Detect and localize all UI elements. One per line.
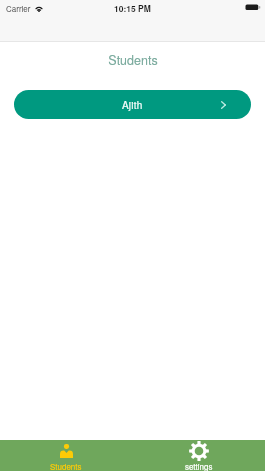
- button[interactable]: Settings tab: [132, 440, 265, 471]
- button[interactable]: Students tab: [0, 440, 132, 471]
- staticText: Students: [50, 461, 82, 471]
- staticText: Ajith: [122, 98, 143, 112]
- staticText: Students: [108, 51, 158, 65]
- staticText: Carrier: [6, 3, 31, 14]
- staticText: settings: [185, 461, 213, 471]
- button[interactable]: Ajith: [14, 90, 251, 119]
- staticText: 10:15 PM: [114, 2, 151, 14]
